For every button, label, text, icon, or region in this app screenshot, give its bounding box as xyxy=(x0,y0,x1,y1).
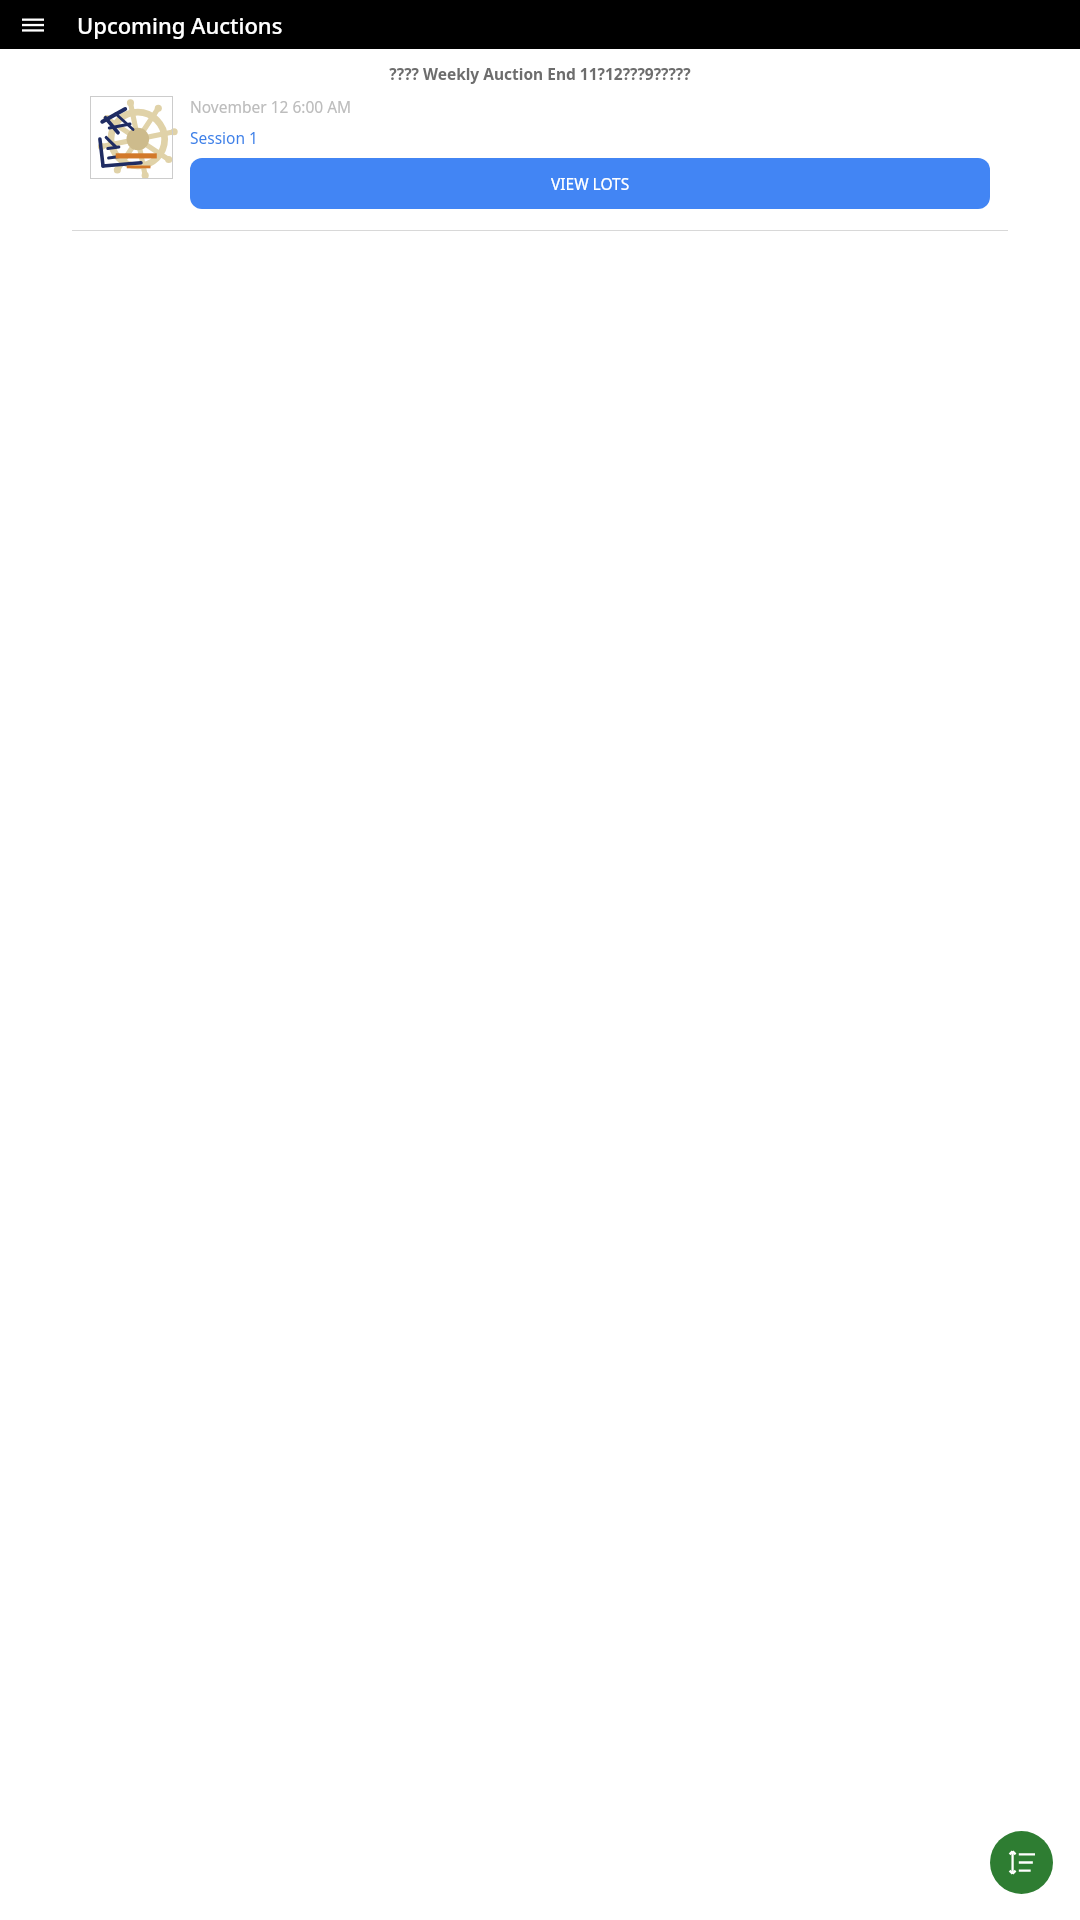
button[interactable]: Sort auctions xyxy=(990,1831,1053,1894)
button[interactable]: VIEW LOTS xyxy=(190,158,990,209)
staticText: Upcoming Auctions xyxy=(77,10,283,40)
button[interactable]: Open navigation menu xyxy=(9,1,57,49)
button[interactable]: ???? Weekly Auction End 11?12???9????? xyxy=(0,55,1080,231)
staticText: ???? Weekly Auction End 11?12???9????? xyxy=(72,63,1008,84)
staticText: November 12 6:00 AM xyxy=(190,96,352,117)
button[interactable]: Session 1 xyxy=(190,127,258,148)
staticText: VIEW LOTS xyxy=(551,173,630,194)
